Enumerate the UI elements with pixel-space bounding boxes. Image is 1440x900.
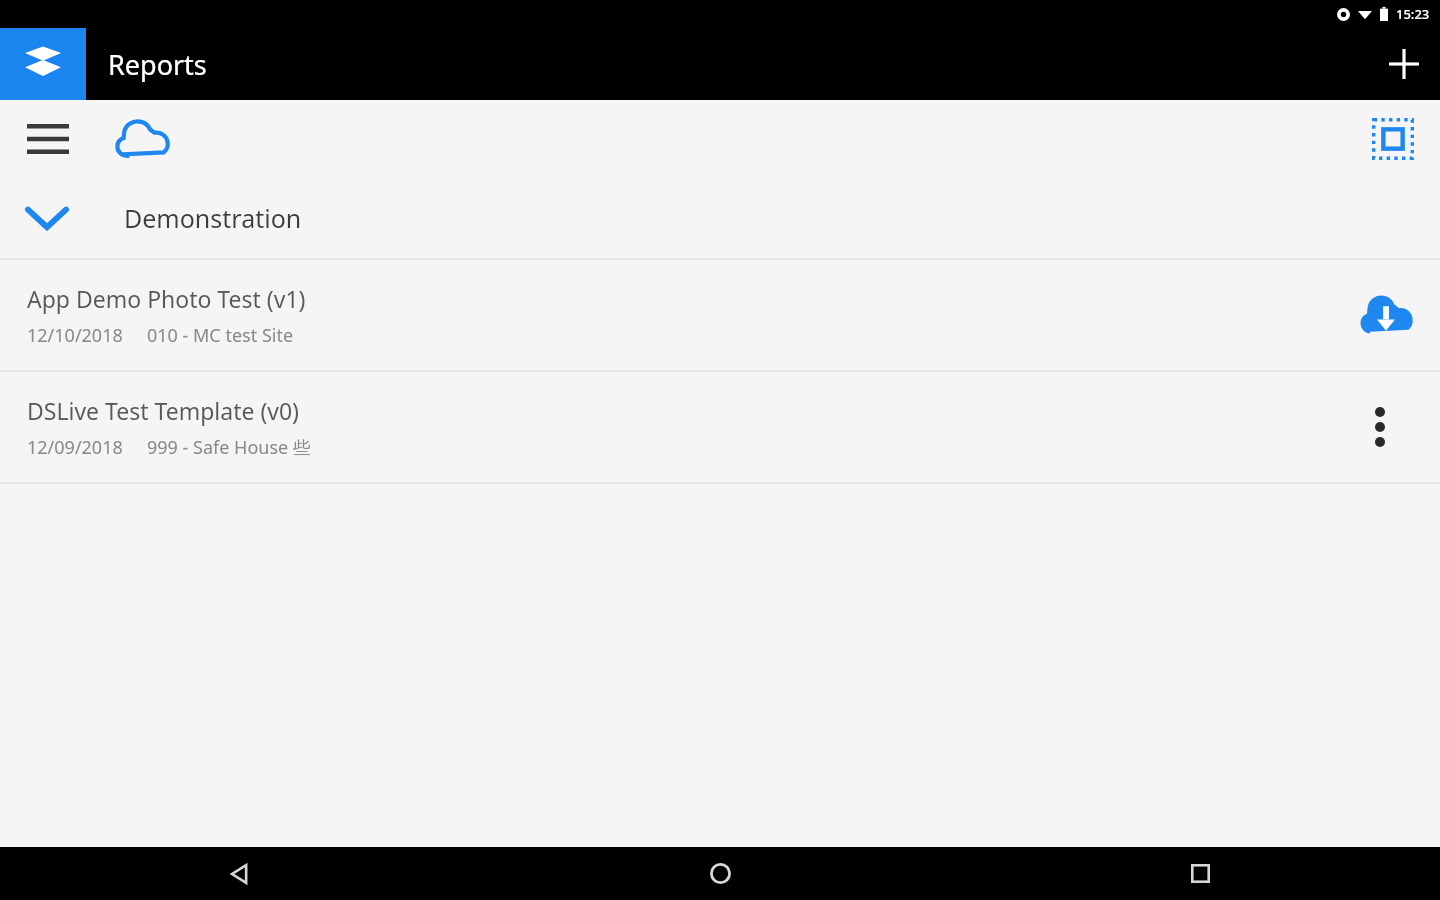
staticText: Demonstration: [124, 201, 302, 235]
button[interactable]: Cloud sync: [104, 101, 180, 177]
staticText: Reports: [108, 46, 207, 83]
button[interactable]: Menu: [14, 105, 82, 173]
button[interactable]: Demonstration: [0, 178, 1440, 258]
button[interactable]: Download: [1350, 279, 1422, 351]
button[interactable]: App Demo Photo Test (v1): [0, 260, 1440, 370]
staticText: 12/09/2018: [27, 435, 123, 460]
button[interactable]: App logo: [0, 28, 86, 100]
button[interactable]: Scan: [1360, 106, 1426, 172]
staticText: 999 - Safe House 些: [147, 435, 311, 460]
button[interactable]: Home: [480, 847, 960, 900]
button[interactable]: Back: [0, 847, 480, 900]
staticText: 010 - MC test Site: [147, 323, 294, 348]
button[interactable]: More options: [1344, 391, 1416, 463]
button[interactable]: DSLive Test Template (v0): [0, 372, 1440, 482]
staticText: 15:23: [1396, 5, 1430, 23]
staticText: 12/10/2018: [27, 323, 123, 348]
button[interactable]: Add: [1368, 28, 1440, 100]
staticText: App Demo Photo Test (v1): [27, 283, 306, 314]
staticText: DSLive Test Template (v0): [27, 395, 300, 426]
button[interactable]: Recent apps: [960, 847, 1440, 900]
